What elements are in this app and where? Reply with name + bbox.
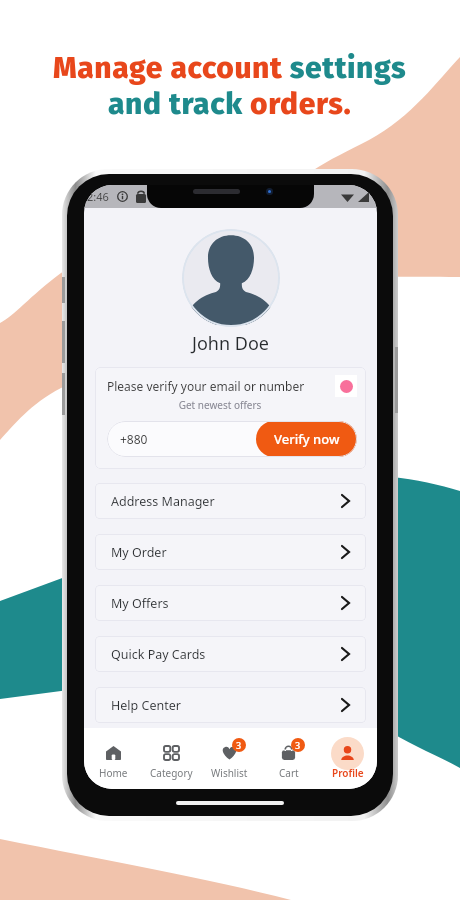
staticText: Wishlist [211, 766, 248, 780]
button[interactable]: 3 [259, 728, 318, 789]
button[interactable]: Address Manager [95, 483, 366, 519]
staticText: Verify now [274, 430, 340, 448]
button[interactable]: Home [84, 728, 142, 789]
button[interactable]: 3 [200, 728, 259, 789]
staticText: Cart [279, 766, 299, 780]
staticText: My Order [111, 544, 167, 561]
staticText: +880 [120, 431, 148, 447]
staticText: Manage account settings [53, 50, 407, 86]
staticText: John Doe [84, 331, 377, 356]
staticText: Home [99, 766, 128, 780]
button[interactable]: Profile [318, 728, 377, 789]
button[interactable]: My Order [95, 534, 366, 570]
staticText: My Offers [111, 595, 169, 612]
staticText: and track orders. [108, 86, 352, 122]
button[interactable]: Verify now [256, 421, 357, 457]
staticText: Category [150, 766, 193, 780]
staticText: Please verify your email or number [107, 378, 305, 394]
staticText: Quick Pay Cards [111, 646, 206, 663]
button[interactable]: My Offers [95, 585, 366, 621]
staticText: 2:46 [87, 189, 109, 204]
staticText: Get newest offers [107, 398, 333, 412]
staticText: 3 [236, 739, 242, 751]
staticText: Profile [332, 766, 364, 780]
button[interactable]: Quick Pay Cards [95, 636, 366, 672]
staticText: Help Center [111, 697, 181, 714]
staticText: 3 [295, 739, 301, 751]
button[interactable]: Help Center [95, 687, 366, 723]
button[interactable]: Category [142, 728, 200, 789]
staticText: Address Manager [111, 493, 215, 510]
